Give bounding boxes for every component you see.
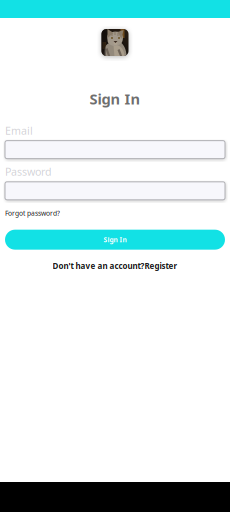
staticText: Sign In xyxy=(103,235,126,244)
staticText: Forgot password? xyxy=(5,209,60,218)
button[interactable]: Password xyxy=(5,179,225,200)
button[interactable]: Don't have an account?Register xyxy=(52,250,177,271)
staticText: Email xyxy=(5,123,33,138)
button[interactable]: Email xyxy=(5,138,225,159)
staticText: Password xyxy=(5,165,52,179)
button[interactable]: Forgot password? xyxy=(5,200,60,220)
button[interactable]: Sign In xyxy=(5,230,225,250)
staticText: Don't have an account?Register xyxy=(52,261,177,271)
staticText: Sign In xyxy=(89,89,140,108)
